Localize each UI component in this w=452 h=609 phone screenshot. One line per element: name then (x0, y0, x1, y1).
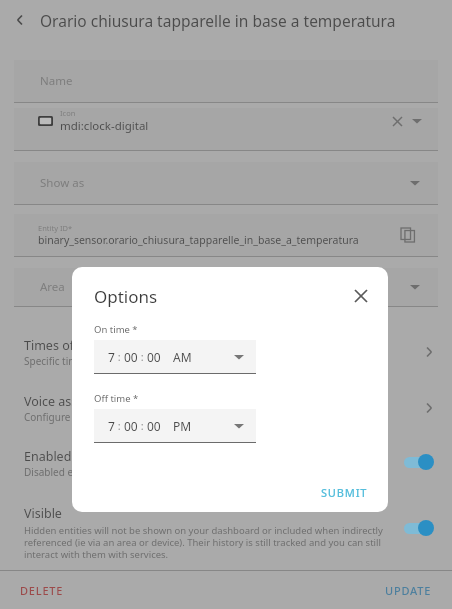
staticText: SUBMIT (321, 485, 368, 500)
button[interactable]: Voice assistants (0, 386, 452, 430)
staticText: : (115, 349, 124, 364)
staticText: DELETE (20, 583, 64, 598)
staticText: Name (40, 73, 73, 89)
staticText: 00 (147, 349, 161, 365)
button[interactable]: Icon (14, 108, 438, 150)
staticText: 00 (147, 418, 161, 434)
button[interactable]: Area (14, 268, 438, 306)
staticText: UPDATE (385, 583, 432, 598)
staticText: Voice assistants (24, 393, 117, 410)
staticText: Area (40, 279, 65, 295)
staticText: Visible (24, 505, 62, 522)
button[interactable]: UPDATE (373, 575, 452, 606)
button[interactable]: SUBMIT (309, 477, 380, 508)
button[interactable]: Back (0, 0, 40, 40)
staticText: : (115, 418, 124, 433)
staticText: Off time * (94, 392, 139, 405)
button[interactable]: Entity ID* (14, 214, 438, 256)
button[interactable]: Close (348, 283, 374, 309)
staticText: binary_sensor.orario_chiusura_tapparelle… (38, 233, 359, 247)
staticText: Hidden entities will not be shown on you… (24, 524, 394, 561)
staticText: Disabled entities (24, 465, 103, 479)
staticText: Configure (24, 410, 71, 424)
button[interactable]: Copy (398, 225, 418, 245)
staticText: Entity ID* (38, 223, 73, 233)
button[interactable]: 7 (94, 409, 256, 443)
button[interactable]: Toggle (402, 519, 436, 537)
staticText: 7 (108, 418, 115, 434)
staticText: Icon (60, 108, 76, 118)
staticText: PM (173, 418, 192, 434)
staticText: Options (94, 285, 158, 308)
button[interactable]: Clear (388, 112, 406, 130)
staticText: : (138, 418, 147, 433)
staticText: Specific times (24, 354, 89, 368)
staticText: AM (173, 349, 192, 365)
button[interactable]: Toggle (402, 453, 436, 471)
staticText: 00 (124, 349, 138, 365)
staticText: : (138, 349, 147, 364)
staticText: Orario chiusura tapparelle in base a tem… (40, 10, 396, 31)
button[interactable]: 7 (94, 340, 256, 374)
staticText: Times of day (24, 337, 99, 354)
staticText: mdi:clock-digital (60, 118, 149, 134)
staticText: 7 (108, 349, 115, 365)
staticText: 00 (124, 418, 138, 434)
button[interactable]: Times of day (0, 330, 452, 374)
staticText: Enabled (24, 448, 72, 465)
staticText: On time * (94, 323, 138, 336)
staticText: Show as (40, 175, 85, 191)
button[interactable]: Show as (14, 162, 438, 204)
button[interactable]: DELETE (0, 575, 76, 606)
